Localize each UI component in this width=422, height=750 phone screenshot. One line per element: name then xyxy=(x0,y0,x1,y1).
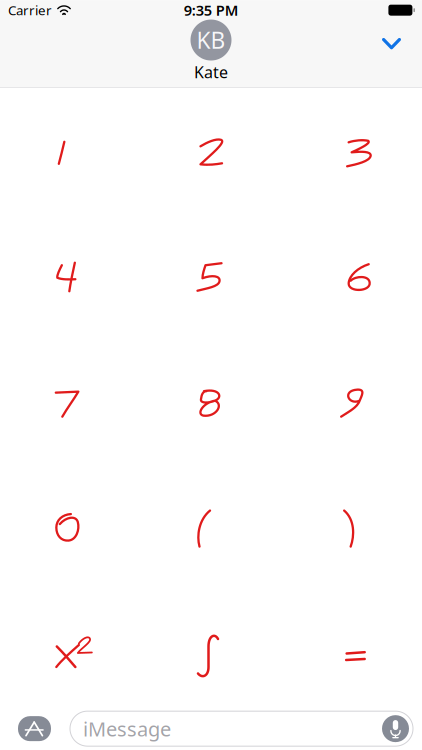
button[interactable]: Equals xyxy=(281,591,422,717)
button[interactable]: Integral xyxy=(141,591,281,717)
button[interactable]: 5 xyxy=(141,214,281,340)
button[interactable]: 6 xyxy=(281,214,422,340)
button[interactable]: 0 xyxy=(0,466,141,591)
staticText: iMessage xyxy=(83,715,171,742)
button[interactable]: 4 xyxy=(0,214,141,340)
button[interactable]: 2 xyxy=(141,88,281,214)
button[interactable]: 8 xyxy=(141,340,281,466)
button[interactable]: Left parenthesis xyxy=(141,466,281,591)
staticText: Kate xyxy=(194,61,228,83)
button[interactable]: Hide details xyxy=(369,25,414,62)
button[interactable]: 9 xyxy=(281,340,422,466)
button[interactable]: 1 xyxy=(0,88,141,214)
button[interactable]: App Store xyxy=(15,716,54,741)
staticText: KB xyxy=(196,25,225,55)
button[interactable]: 7 xyxy=(0,340,141,466)
staticText: 9:35 PM xyxy=(184,0,239,20)
staticText: Carrier xyxy=(8,1,52,19)
button[interactable]: x squared xyxy=(0,591,141,717)
button[interactable]: 3 xyxy=(281,88,422,214)
button[interactable]: Right parenthesis xyxy=(281,466,422,591)
